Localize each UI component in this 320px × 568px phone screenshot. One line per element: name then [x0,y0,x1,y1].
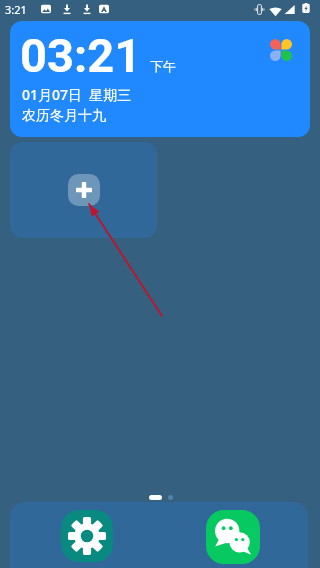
staticText: 农历冬月十九 [22,107,106,125]
staticText: 下午 [150,58,176,74]
button[interactable]: App shortcut [270,39,292,61]
button[interactable]: Add widget [68,174,100,206]
button[interactable]: 03:21 [10,21,310,137]
staticText: 03:21 [20,28,142,83]
staticText: 01月07日 星期三 [22,85,132,104]
button[interactable]: WeChat [206,510,260,564]
button[interactable]: Add widget [10,142,157,238]
staticText: 3:21 [5,2,27,17]
button[interactable]: Settings [61,510,113,562]
